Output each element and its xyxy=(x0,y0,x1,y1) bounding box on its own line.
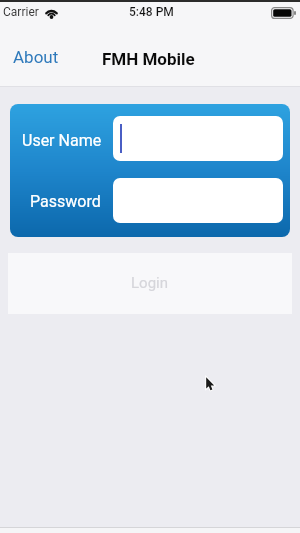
staticText: About xyxy=(13,47,59,67)
staticText: Login xyxy=(131,274,168,292)
staticText: Password xyxy=(30,192,101,211)
staticText: Carrier xyxy=(3,5,39,19)
staticText: FMH Mobile xyxy=(102,49,195,69)
staticText: User Name xyxy=(22,131,102,150)
staticText: 5:48 PM xyxy=(129,5,174,19)
